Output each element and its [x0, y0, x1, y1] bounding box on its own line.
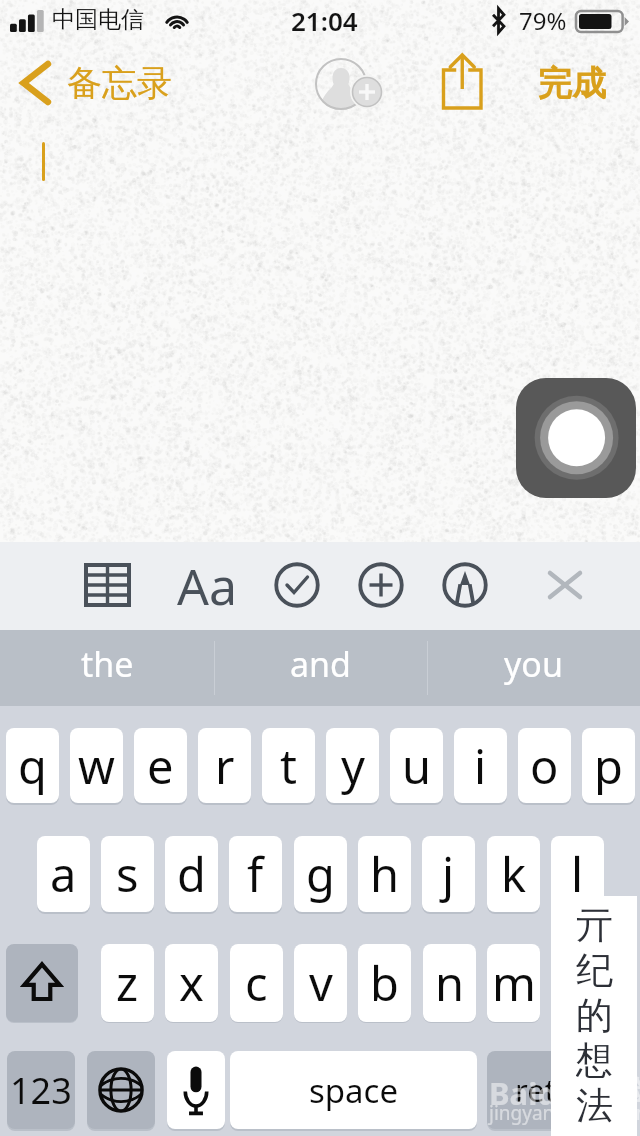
staticText: n: [435, 951, 465, 1015]
button[interactable]: b: [358, 944, 411, 1022]
button[interactable]: Hide keyboard: [540, 560, 590, 610]
button[interactable]: 备忘录: [20, 58, 172, 108]
staticText: k: [501, 842, 527, 906]
button[interactable]: p: [582, 728, 635, 803]
button[interactable]: q: [6, 728, 59, 803]
staticText: the: [81, 641, 134, 687]
button[interactable]: x: [165, 944, 218, 1022]
button[interactable]: Checklist: [272, 560, 322, 610]
staticText: 79%: [519, 4, 567, 37]
staticText: return: [515, 1069, 607, 1111]
staticText: p: [594, 734, 623, 798]
staticText: h: [370, 842, 400, 906]
button[interactable]: t: [262, 728, 315, 803]
button[interactable]: Dictate: [167, 1051, 225, 1129]
staticText: 经验: [591, 1073, 640, 1108]
staticText: 备忘录: [67, 61, 172, 105]
staticText: g: [306, 842, 335, 906]
staticText: v: [309, 951, 333, 1015]
staticText: f: [247, 842, 264, 906]
staticText: c: [245, 951, 268, 1015]
staticText: m: [492, 951, 536, 1015]
staticText: you: [504, 641, 563, 687]
staticText: l: [571, 842, 584, 906]
staticText: d: [177, 842, 206, 906]
button[interactable]: you: [427, 630, 640, 706]
button[interactable]: m: [487, 944, 540, 1022]
button[interactable]: return: [487, 1051, 635, 1129]
button[interactable]: 完成: [538, 62, 606, 105]
button[interactable]: Add attachment: [356, 560, 406, 610]
staticText: 法: [576, 1082, 613, 1127]
button[interactable]: i: [454, 728, 507, 803]
button[interactable]: z: [101, 944, 154, 1022]
staticText: 123: [10, 1066, 72, 1115]
staticText: t: [280, 734, 297, 798]
button[interactable]: Share: [437, 47, 489, 119]
button[interactable]: c: [230, 944, 283, 1022]
button[interactable]: Aa: [177, 552, 237, 620]
staticText: z: [116, 951, 139, 1015]
staticText: w: [78, 734, 115, 798]
button[interactable]: d: [165, 836, 218, 912]
staticText: 的: [576, 992, 613, 1037]
staticText: 想: [576, 1037, 613, 1082]
button[interactable]: j: [422, 836, 475, 912]
button[interactable]: l: [551, 836, 604, 912]
button[interactable]: h: [358, 836, 411, 912]
button[interactable]: n: [423, 944, 476, 1022]
button[interactable]: 123: [7, 1051, 75, 1129]
button[interactable]: f: [229, 836, 282, 912]
button[interactable]: Next keyboard: [87, 1051, 155, 1129]
staticText: j: [442, 842, 455, 906]
button[interactable]: the: [0, 630, 214, 706]
button[interactable]: AssistiveTouch: [516, 378, 636, 498]
staticText: x: [179, 951, 204, 1015]
staticText: 亓: [576, 902, 613, 947]
staticText: and: [290, 641, 351, 687]
button[interactable]: e: [134, 728, 187, 803]
staticText: r: [215, 734, 235, 798]
staticText: o: [530, 734, 559, 798]
button[interactable]: o: [518, 728, 571, 803]
button[interactable]: k: [487, 836, 540, 912]
staticText: s: [116, 842, 139, 906]
staticText: y: [341, 734, 365, 798]
button[interactable]: Markup: [440, 560, 490, 610]
staticText: 中国电信: [52, 5, 144, 34]
button[interactable]: and: [214, 630, 427, 706]
staticText: 21:04: [291, 3, 358, 38]
staticText: jingyan.baidu.com: [489, 1100, 640, 1126]
staticText: e: [147, 734, 174, 798]
button[interactable]: Shift: [6, 944, 78, 1022]
button[interactable]: Table: [84, 562, 132, 610]
staticText: Baidu: [489, 1072, 578, 1114]
button[interactable]: y: [326, 728, 379, 803]
staticText: 纪: [576, 947, 613, 992]
staticText: q: [18, 734, 47, 798]
button[interactable]: u: [390, 728, 443, 803]
staticText: a: [50, 842, 77, 906]
button[interactable]: s: [101, 836, 154, 912]
staticText: i: [474, 734, 487, 798]
button[interactable]: space: [230, 1051, 477, 1129]
staticText: 完成: [538, 62, 606, 105]
staticText: space: [309, 1068, 399, 1113]
staticText: u: [402, 734, 432, 798]
button[interactable]: Add People: [312, 56, 384, 128]
button[interactable]: r: [198, 728, 251, 803]
staticText: b: [370, 951, 399, 1015]
button[interactable]: Backspace: [562, 944, 634, 1022]
button[interactable]: v: [294, 944, 347, 1022]
button[interactable]: a: [37, 836, 90, 912]
button[interactable]: g: [294, 836, 347, 912]
button[interactable]: w: [70, 728, 123, 803]
